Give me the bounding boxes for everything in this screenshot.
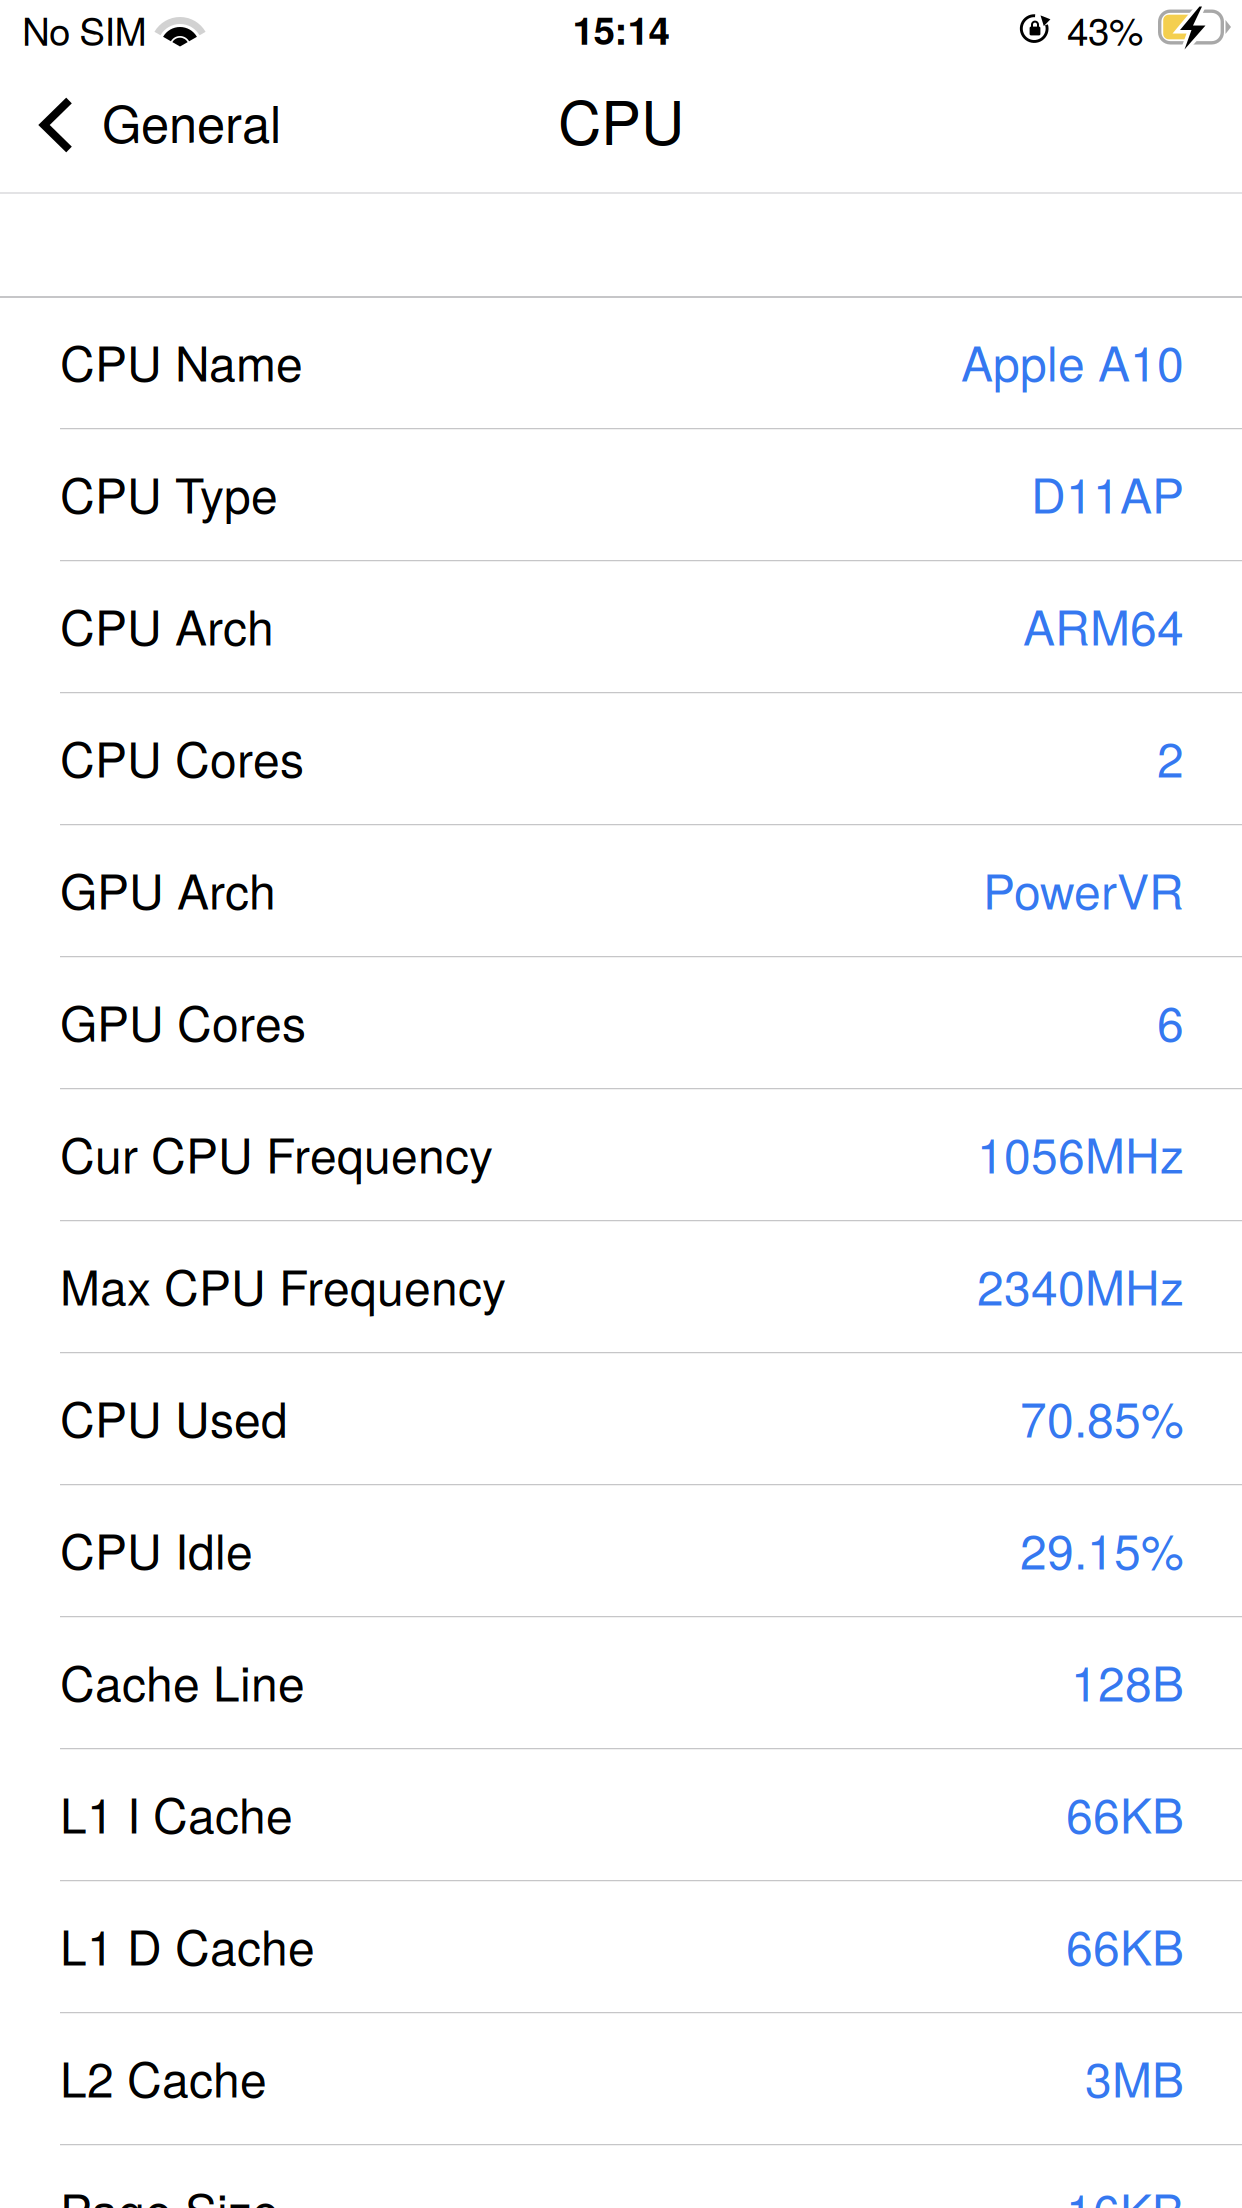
button[interactable]: CPU Type [0, 429, 1242, 561]
button[interactable]: GPU Cores [0, 957, 1242, 1089]
staticText: Max CPU Frequency [60, 1250, 506, 1319]
staticText: L1 D Cache [60, 1910, 315, 1979]
staticText: 16KB [1066, 2174, 1184, 2208]
staticText: CPU Arch [60, 590, 274, 659]
button[interactable]: CPU Cores [0, 693, 1242, 825]
staticText: 128B [1071, 1646, 1184, 1715]
staticText: 29.15% [1020, 1514, 1184, 1583]
staticText: 6 [1157, 986, 1184, 1055]
button[interactable]: Page Size [0, 2145, 1242, 2208]
button[interactable]: Cache Line [0, 1617, 1242, 1749]
staticText: No SIM [22, 1, 146, 57]
staticText: 43% [1067, 1, 1143, 57]
button[interactable]: L1 D Cache [0, 1881, 1242, 2013]
staticText: L2 Cache [60, 2042, 267, 2111]
staticText: 2340MHz [977, 1250, 1184, 1319]
staticText: D11AP [1031, 458, 1184, 527]
staticText: 66KB [1066, 1778, 1184, 1847]
staticText: CPU [558, 76, 684, 162]
button[interactable]: Max CPU Frequency [0, 1221, 1242, 1353]
staticText: CPU Type [60, 458, 278, 527]
staticText: 2 [1157, 722, 1184, 791]
staticText: CPU Name [60, 326, 303, 395]
staticText: GPU Cores [60, 986, 306, 1055]
staticText: PowerVR [983, 854, 1184, 923]
button[interactable]: General [0, 70, 303, 192]
staticText: General [102, 85, 281, 157]
staticText: Apple A10 [961, 326, 1184, 395]
button[interactable]: CPU Name [0, 297, 1242, 429]
staticText: 1056MHz [977, 1118, 1184, 1187]
staticText: 70.85% [1020, 1382, 1184, 1451]
staticText: Cur CPU Frequency [60, 1118, 493, 1187]
staticText: GPU Arch [60, 854, 276, 923]
staticText: L1 I Cache [60, 1778, 293, 1847]
staticText: 15:14 [572, 1, 669, 57]
button[interactable]: GPU Arch [0, 825, 1242, 957]
staticText: Cache Line [60, 1646, 305, 1715]
staticText: CPU Idle [60, 1514, 253, 1583]
staticText: CPU Cores [60, 722, 304, 791]
staticText: CPU Used [60, 1382, 288, 1451]
staticText: ARM64 [1023, 590, 1184, 659]
button[interactable]: L1 I Cache [0, 1749, 1242, 1881]
button[interactable]: CPU Used [0, 1353, 1242, 1485]
staticText: Page Size [60, 2174, 279, 2208]
staticText: 66KB [1066, 1910, 1184, 1979]
button[interactable]: CPU Arch [0, 561, 1242, 693]
button[interactable]: L2 Cache [0, 2013, 1242, 2145]
button[interactable]: CPU Idle [0, 1485, 1242, 1617]
button[interactable]: Cur CPU Frequency [0, 1089, 1242, 1221]
staticText: 3MB [1085, 2042, 1184, 2111]
